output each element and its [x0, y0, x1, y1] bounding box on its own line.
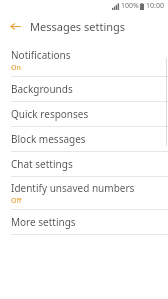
- button[interactable]: Chat settings: [0, 152, 168, 176]
- button[interactable]: Notifications: [0, 44, 168, 76]
- staticText: 100%: [121, 1, 139, 11]
- staticText: More settings: [11, 215, 76, 229]
- button[interactable]: Identify unsaved numbers: [0, 177, 168, 209]
- staticText: Quick responses: [11, 107, 89, 121]
- button[interactable]: More settings: [0, 210, 168, 234]
- staticText: Off: [11, 196, 22, 206]
- button[interactable]: Block messages: [0, 127, 168, 151]
- staticText: Messages settings: [30, 19, 126, 34]
- button[interactable]: Quick responses: [0, 102, 168, 126]
- staticText: Chat settings: [11, 157, 73, 171]
- button[interactable]: Back: [7, 18, 23, 34]
- staticText: Block messages: [11, 132, 86, 146]
- staticText: Backgrounds: [11, 82, 73, 96]
- staticText: 10:00: [146, 1, 164, 11]
- staticText: Notifications: [11, 48, 71, 62]
- button[interactable]: Backgrounds: [0, 77, 168, 101]
- staticText: On: [11, 63, 21, 73]
- staticText: Identify unsaved numbers: [11, 181, 135, 195]
